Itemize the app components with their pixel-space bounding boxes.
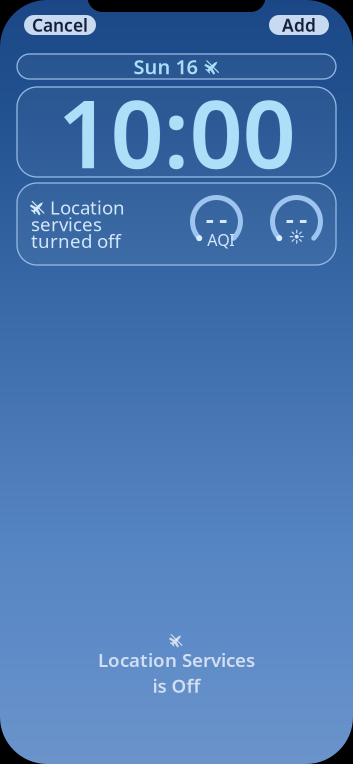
staticText: Cancel [32,13,88,36]
staticText: 10:00 [57,70,295,194]
staticText: Location Services [98,647,255,672]
staticText: AQI [207,229,234,250]
staticText: Location [50,195,125,220]
staticText: turned off [31,228,121,253]
button[interactable]: Add [269,15,329,35]
staticText: Sun 16 [133,53,197,80]
button[interactable]: Cancel [24,15,96,35]
staticText: is Off [152,673,200,698]
button[interactable]: 10:00 [17,87,336,177]
staticText: services [31,212,102,236]
staticText: Add [282,13,316,36]
button[interactable]: Location [17,183,336,265]
button[interactable]: Sun 16 [17,54,336,79]
